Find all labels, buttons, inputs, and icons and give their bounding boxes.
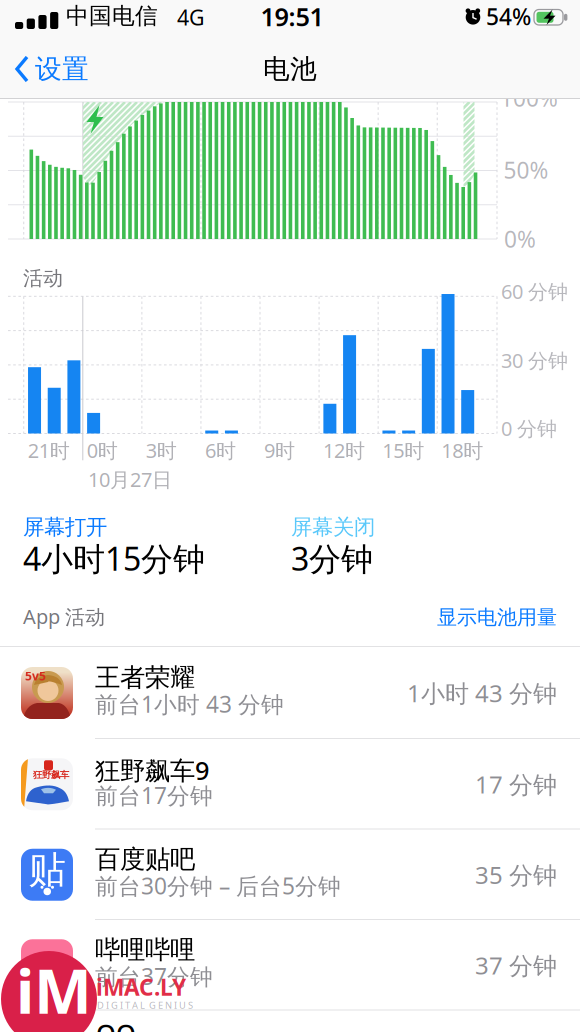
staticText: 前台17分钟 <box>95 780 213 810</box>
staticText: 30 分钟 <box>501 347 568 374</box>
staticText: 1小时 43 分钟 <box>407 677 557 709</box>
staticText: 60 分钟 <box>501 278 568 305</box>
staticText: 0% <box>504 224 536 254</box>
staticText: 王者荣耀 <box>95 662 195 693</box>
staticText: 百度贴吧 <box>95 844 195 875</box>
staticText: 18时 <box>441 437 483 464</box>
staticText: 12时 <box>323 437 365 464</box>
staticText: 狂野飙车 <box>33 769 69 781</box>
staticText: 前台1小时 43 分钟 <box>95 689 284 719</box>
staticText: 中国电信 <box>66 2 158 30</box>
staticText: 贴 <box>28 847 65 893</box>
staticText: 屏幕打开 <box>23 514 107 540</box>
staticText: 37 分钟 <box>475 949 557 981</box>
staticText: 哔哩哔哩 <box>95 934 195 965</box>
staticText: 3分钟 <box>291 537 373 579</box>
staticText: 电池 <box>263 53 317 85</box>
staticText: 狂野飙车9 <box>95 753 209 787</box>
staticText: 前台37分钟 <box>95 961 213 991</box>
staticText: 前台30分钟 – 后台5分钟 <box>95 871 341 901</box>
staticText: 0时 <box>87 437 118 464</box>
staticText: 100% <box>500 83 558 113</box>
button[interactable]: 贴 <box>0 829 580 920</box>
staticText: iM <box>16 949 92 1031</box>
staticText: 19:51 <box>260 0 323 33</box>
button[interactable]: 返回设置 <box>14 42 89 96</box>
staticText: 50% <box>503 155 548 185</box>
staticText: 15时 <box>382 437 424 464</box>
staticText: App 活动 <box>23 603 105 630</box>
staticText: D I G I T A L G E N I U S <box>97 999 193 1011</box>
staticText: 6时 <box>205 437 236 464</box>
staticText: 3时 <box>146 437 177 464</box>
staticText: QQ <box>96 1016 136 1032</box>
staticText: 5v5 <box>25 668 46 684</box>
staticText: 4小时15分钟 <box>23 537 205 579</box>
staticText: 设置 <box>35 53 89 85</box>
staticText: 0 分钟 <box>501 415 557 442</box>
staticText: iMAC.LY <box>96 972 186 1002</box>
staticText: 10月27日 <box>88 466 172 493</box>
staticText: 4G <box>177 3 205 31</box>
staticText: 54% <box>486 1 531 31</box>
button[interactable]: 哔哩哔哩 <box>0 920 580 1010</box>
staticText: 活动 <box>23 266 63 291</box>
staticText: 显示电池用量 <box>437 605 557 630</box>
staticText: 21时 <box>28 437 70 464</box>
button[interactable]: 狂野飙车 <box>0 739 580 829</box>
staticText: 17 分钟 <box>475 768 557 800</box>
button[interactable]: 显示电池用量 <box>437 605 557 630</box>
staticText: 35 分钟 <box>475 859 557 891</box>
staticText: 屏幕关闭 <box>291 514 375 540</box>
button[interactable]: 5v5 <box>0 647 580 739</box>
staticText: 9时 <box>264 437 295 464</box>
